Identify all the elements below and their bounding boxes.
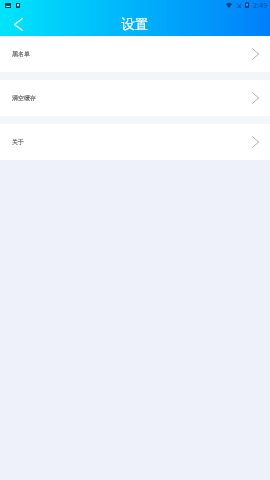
- staticText: 清空缓存: [12, 94, 36, 102]
- staticText: 黑名单: [12, 50, 30, 58]
- staticText: 关于: [12, 138, 24, 146]
- staticText: 黑名单: [12, 50, 30, 58]
- staticText: 2:49: [253, 0, 268, 10]
- button[interactable]: 关于: [0, 124, 270, 160]
- button[interactable]: Back: [0, 13, 36, 36]
- staticText: 设置: [121, 16, 149, 33]
- button[interactable]: 清空缓存: [0, 80, 270, 116]
- button[interactable]: 黑名单: [0, 36, 270, 72]
- staticText: 清空缓存: [12, 94, 36, 102]
- staticText: 关于: [12, 138, 24, 146]
